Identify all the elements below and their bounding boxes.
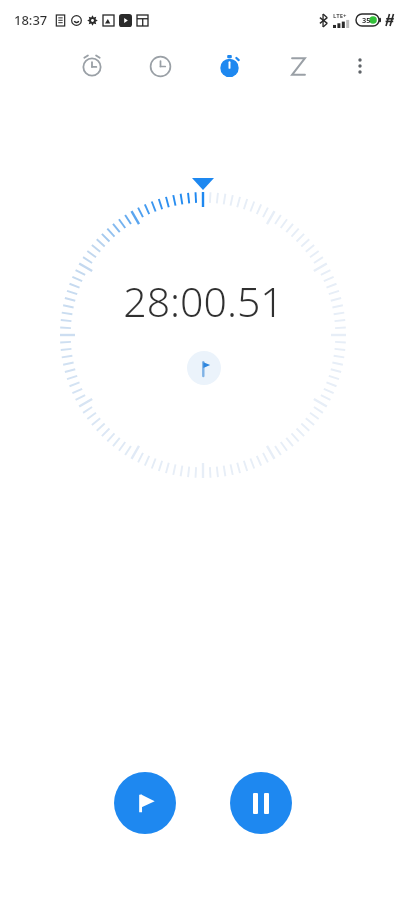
button[interactable]: World clock xyxy=(145,43,176,89)
staticText: 35 xyxy=(362,15,371,25)
button[interactable]: Stopwatch xyxy=(214,43,245,89)
button[interactable]: More options xyxy=(344,43,375,89)
staticText: LTE+ xyxy=(333,12,347,20)
button[interactable]: Lap xyxy=(114,772,176,834)
button[interactable]: Pause xyxy=(230,772,292,834)
staticText: 18:37 xyxy=(14,11,48,29)
staticText: 28:00.51 xyxy=(123,273,284,329)
button[interactable]: Timer xyxy=(283,43,314,89)
button[interactable]: Alarm xyxy=(76,43,107,89)
button[interactable]: Lap xyxy=(187,351,221,385)
